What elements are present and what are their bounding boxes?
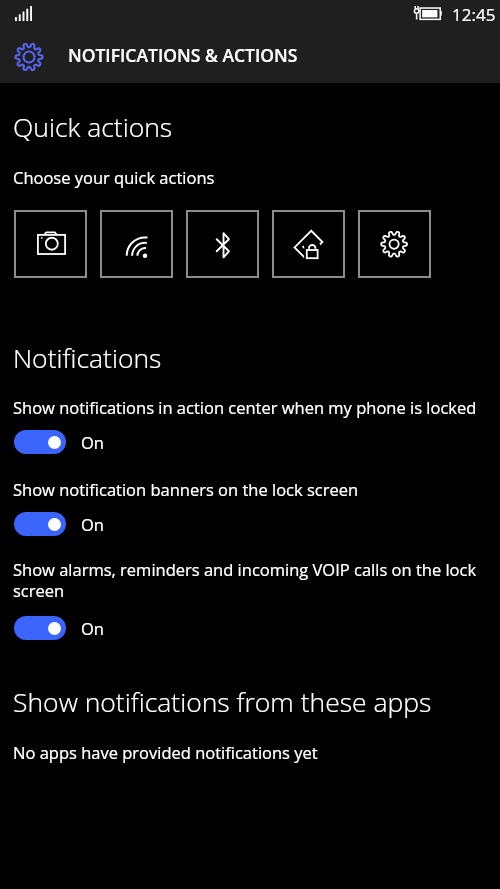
- button[interactable]: Wi-Fi: [100, 210, 173, 278]
- staticText: Show notification banners on the lock sc…: [13, 478, 487, 500]
- button[interactable]: On: [14, 512, 104, 536]
- other: Signal strength: [15, 6, 32, 21]
- staticText: No apps have provided notifications yet: [13, 741, 318, 763]
- staticText: Choose your quick actions: [13, 166, 215, 188]
- button[interactable]: Rotation lock: [272, 210, 345, 278]
- staticText: 12:45: [452, 3, 496, 26]
- staticText: On: [81, 513, 104, 535]
- button[interactable]: On: [14, 616, 104, 640]
- staticText: Quick actions: [13, 109, 173, 145]
- button[interactable]: Settings: [0, 0, 500, 83]
- button[interactable]: All settings: [358, 210, 431, 278]
- staticText: NOTIFICATIONS & ACTIONS: [68, 43, 298, 67]
- other: Battery charging: [414, 6, 442, 20]
- staticText: Show notifications in action center when…: [13, 396, 487, 418]
- staticText: On: [81, 431, 104, 453]
- button[interactable]: Camera: [14, 210, 87, 278]
- staticText: Notifications: [13, 340, 162, 376]
- staticText: Show alarms, reminders and incoming VOIP…: [13, 558, 487, 602]
- staticText: Show notifications from these apps: [13, 684, 432, 720]
- staticText: On: [81, 617, 104, 639]
- other: Settings: [14, 42, 44, 72]
- button[interactable]: On: [14, 430, 104, 454]
- button[interactable]: Bluetooth: [186, 210, 259, 278]
